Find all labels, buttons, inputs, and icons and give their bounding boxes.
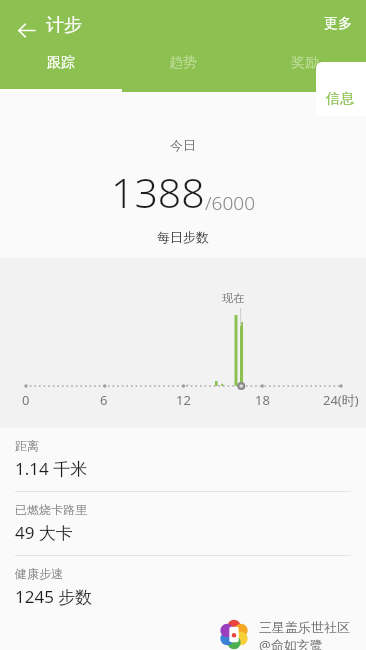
- staticText: 0: [22, 391, 30, 409]
- staticText: 1.14 千米: [15, 457, 88, 480]
- button[interactable]: 返回: [8, 12, 44, 48]
- button[interactable]: 更多: [310, 8, 366, 40]
- staticText: @命如玄鹭: [259, 636, 323, 650]
- staticText: 距离: [15, 438, 39, 453]
- staticText: 计步: [46, 14, 82, 37]
- button[interactable]: 信息: [316, 62, 366, 116]
- staticText: 今日: [170, 137, 196, 153]
- button[interactable]: 跟踪: [0, 54, 122, 72]
- staticText: 现在: [222, 291, 244, 305]
- button[interactable]: 已燃烧卡路里: [0, 492, 366, 555]
- staticText: 已燃烧卡路里: [15, 502, 87, 517]
- staticText: 更多: [324, 15, 352, 33]
- staticText: 6: [100, 391, 108, 409]
- button[interactable]: 趋势: [122, 54, 244, 72]
- staticText: 18: [255, 391, 270, 409]
- staticText: 1245 步数: [15, 585, 93, 608]
- staticText: 12: [176, 391, 191, 409]
- staticText: 趋势: [169, 54, 197, 72]
- staticText: 跟踪: [47, 54, 75, 72]
- button[interactable]: 健康步速: [0, 556, 366, 619]
- staticText: 三星盖乐世社区: [259, 619, 350, 635]
- button[interactable]: 奖励: [244, 54, 366, 72]
- staticText: 健康步速: [15, 566, 63, 581]
- button[interactable]: 距离: [0, 428, 366, 491]
- staticText: 每日步数: [157, 229, 209, 245]
- button[interactable]: 计步: [44, 8, 84, 43]
- staticText: 信息: [326, 90, 354, 108]
- staticText: 49 大卡: [15, 521, 73, 544]
- staticText: 奖励: [291, 54, 319, 72]
- staticText: /6000: [205, 190, 255, 216]
- staticText: 24(时): [323, 391, 359, 409]
- staticText: 1388: [111, 164, 205, 220]
